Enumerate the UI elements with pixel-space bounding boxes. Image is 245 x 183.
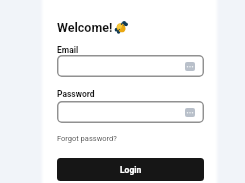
button[interactable]: Forgot password? <box>57 134 117 143</box>
staticText: Login <box>120 165 142 175</box>
other: Autofill <box>185 62 195 71</box>
button[interactable]: Autofill <box>57 55 204 77</box>
button[interactable]: Login <box>57 158 204 181</box>
staticText: Password <box>57 89 95 99</box>
staticText: Welcome! <box>57 20 113 35</box>
other: Autofill <box>185 108 195 117</box>
staticText: Email <box>57 45 79 55</box>
button[interactable]: Autofill <box>57 101 204 123</box>
